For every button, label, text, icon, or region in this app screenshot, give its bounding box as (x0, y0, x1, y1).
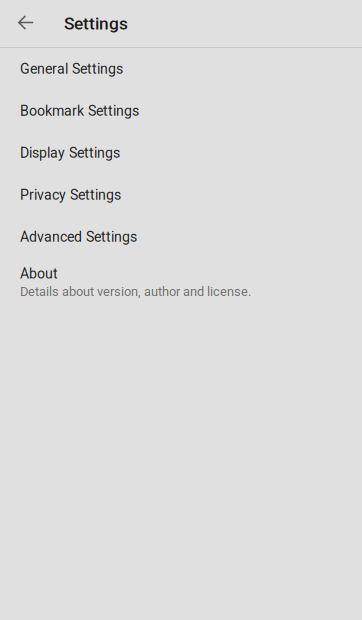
staticText: General Settings (20, 61, 123, 77)
button[interactable]: Display Settings (0, 132, 362, 174)
button[interactable]: General Settings (0, 48, 362, 90)
button[interactable]: Bookmark Settings (0, 90, 362, 132)
staticText: Privacy Settings (20, 187, 121, 203)
staticText: Bookmark Settings (20, 103, 139, 119)
button[interactable]: Advanced Settings (0, 216, 362, 258)
staticText: Advanced Settings (20, 229, 137, 245)
staticText: Display Settings (20, 145, 120, 161)
button[interactable]: About (0, 258, 362, 307)
button[interactable]: Privacy Settings (0, 174, 362, 216)
button[interactable]: Back (0, 2, 46, 44)
staticText: Settings (64, 13, 128, 34)
staticText: Details about version, author and licens… (20, 284, 251, 299)
staticText: About (20, 265, 58, 282)
